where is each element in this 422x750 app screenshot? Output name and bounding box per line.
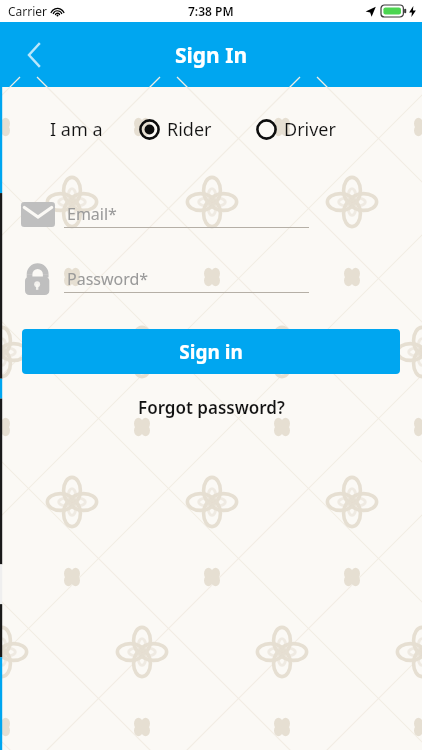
staticText: Sign In xyxy=(175,41,248,70)
button[interactable]: Sign in xyxy=(22,329,400,374)
staticText: Driver xyxy=(284,117,336,142)
button[interactable]: Forgot password? xyxy=(0,392,422,422)
staticText: I am a xyxy=(50,117,103,142)
button[interactable]: Driver xyxy=(256,117,336,142)
staticText: Rider xyxy=(167,117,212,142)
button[interactable]: Password* xyxy=(64,266,309,292)
staticText: Carrier xyxy=(8,3,48,19)
button[interactable]: Email* xyxy=(64,201,309,227)
staticText: Email* xyxy=(67,203,117,225)
staticText: Password* xyxy=(67,268,149,290)
button[interactable]: Back xyxy=(14,35,54,75)
staticText: 7:38 PM xyxy=(188,3,234,19)
staticText: Sign in xyxy=(179,339,243,365)
staticText: Forgot password? xyxy=(138,396,285,419)
button[interactable]: Rider xyxy=(139,117,212,142)
